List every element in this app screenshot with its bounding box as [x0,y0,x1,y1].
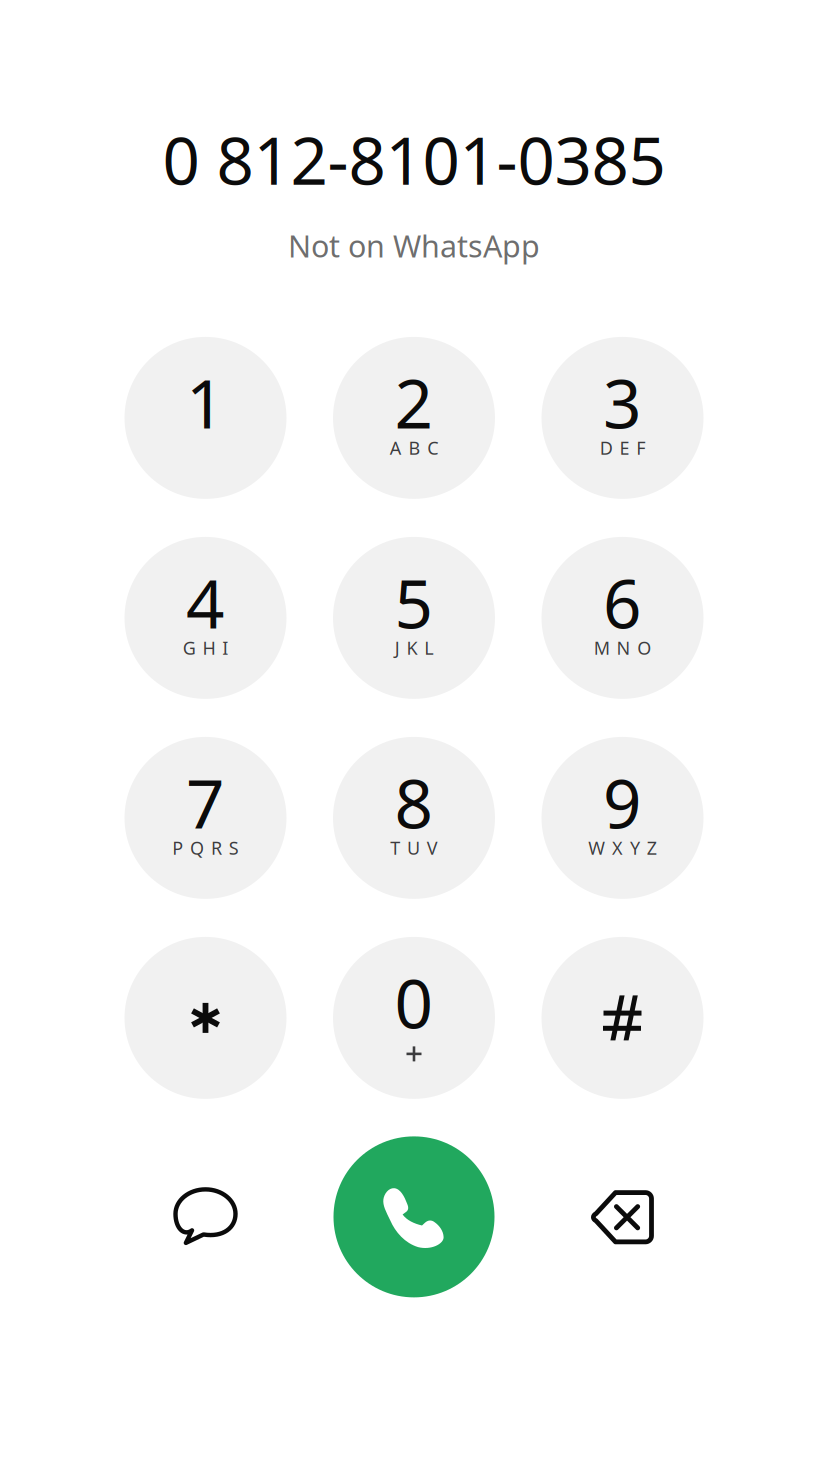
button[interactable]: Call [333,1136,495,1298]
button[interactable]: 6 [541,537,703,699]
staticText: JKL [395,636,433,660]
button[interactable]: Message [124,1136,286,1298]
staticText: 0 [394,956,433,1048]
button[interactable]: 2 [333,337,495,499]
button[interactable]: Delete [541,1136,703,1298]
button[interactable] [124,937,286,1099]
button[interactable]: 9 [541,737,703,899]
staticText: GHI [183,636,228,660]
staticText: 0 812-8101-0385 [162,115,665,204]
staticText: ABC [390,436,438,460]
staticText: Not on WhatsApp [288,225,540,266]
button[interactable]: 0 [333,937,495,1099]
staticText: 9 [603,756,642,848]
staticText: 3 [603,356,642,448]
button[interactable]: 7 [124,737,286,899]
staticText: 7 [186,756,225,848]
staticText: DEF [600,436,645,460]
button[interactable]: 4 [124,537,286,699]
staticText: 8 [394,756,433,848]
staticText: 4 [186,556,225,648]
staticText: 2 [394,356,433,448]
staticText: WXYZ [588,836,657,860]
staticText: PQRS [172,836,239,860]
staticText: 5 [394,556,433,648]
staticText: TUV [390,836,438,860]
staticText: 6 [603,556,642,648]
button[interactable]: 5 [333,537,495,699]
button[interactable]: 3 [541,337,703,499]
button[interactable]: 1 [124,337,286,499]
button[interactable] [541,937,703,1099]
staticText: MNO [594,636,651,660]
button[interactable]: 8 [333,737,495,899]
staticText: 1 [186,356,225,448]
